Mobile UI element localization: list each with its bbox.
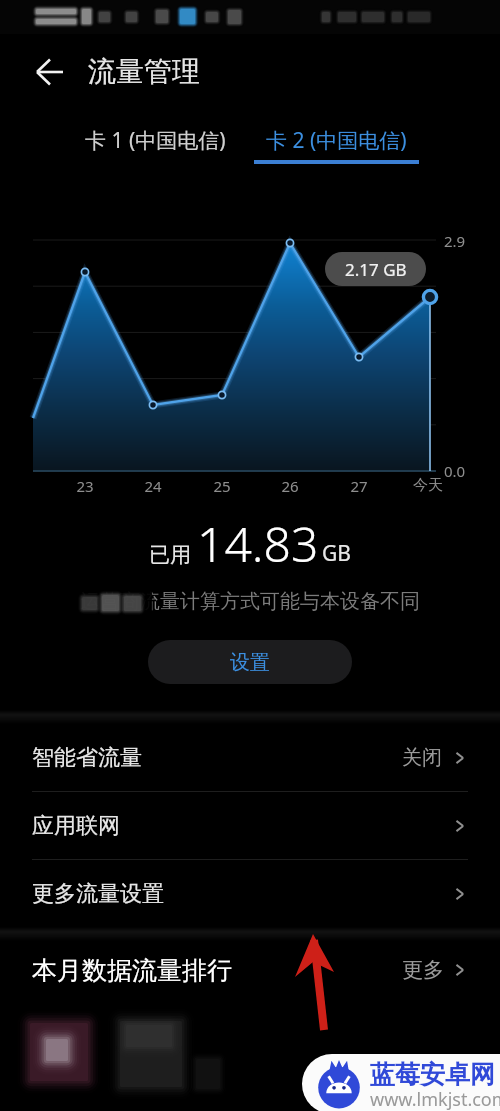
staticText: 已用 [149,542,191,568]
staticText: 24 [144,476,162,496]
staticText: 更多 [402,957,444,983]
staticText: www.lmkjst.com [370,1087,500,1111]
staticText: 蓝莓安卓网 [370,1059,495,1090]
staticText: 关闭 [402,745,442,770]
staticText: 更多流量设置 [32,880,164,908]
button[interactable]: Back [26,48,74,96]
button[interactable]: 设置 [148,640,352,684]
staticText: 应用联网 [32,812,120,840]
staticText: 26 [281,476,299,496]
staticText: 运营商流量计算方式可能与本设备不同 [80,589,420,614]
staticText: 0.0 [444,461,466,481]
staticText: 智能省流量 [32,744,142,772]
staticText: 卡 1 (中国电信) [85,126,226,155]
button[interactable]: 本月数据流量排行 [32,933,468,1007]
button[interactable]: 更多流量设置 [0,860,500,927]
button[interactable]: 智能省流量 [0,724,500,792]
staticText: GB [322,539,351,568]
button[interactable]: 应用联网 [0,792,500,860]
staticText: 27 [350,476,368,496]
staticText: 今天 [413,476,443,495]
staticText: 设置 [230,650,270,675]
staticText: 卡 2 (中国电信) [266,126,407,155]
button[interactable]: 卡 2 (中国电信) [242,126,430,171]
staticText: 14.83 [197,511,319,576]
staticText: 25 [213,476,231,496]
button[interactable]: 卡 1 (中国电信) [61,126,249,166]
staticText: 2.9 [444,231,466,251]
staticText: 流量管理 [88,54,200,89]
staticText: 2.17 GB [345,258,407,281]
staticText: 23 [76,476,94,496]
staticText: 本月数据流量排行 [32,955,232,986]
